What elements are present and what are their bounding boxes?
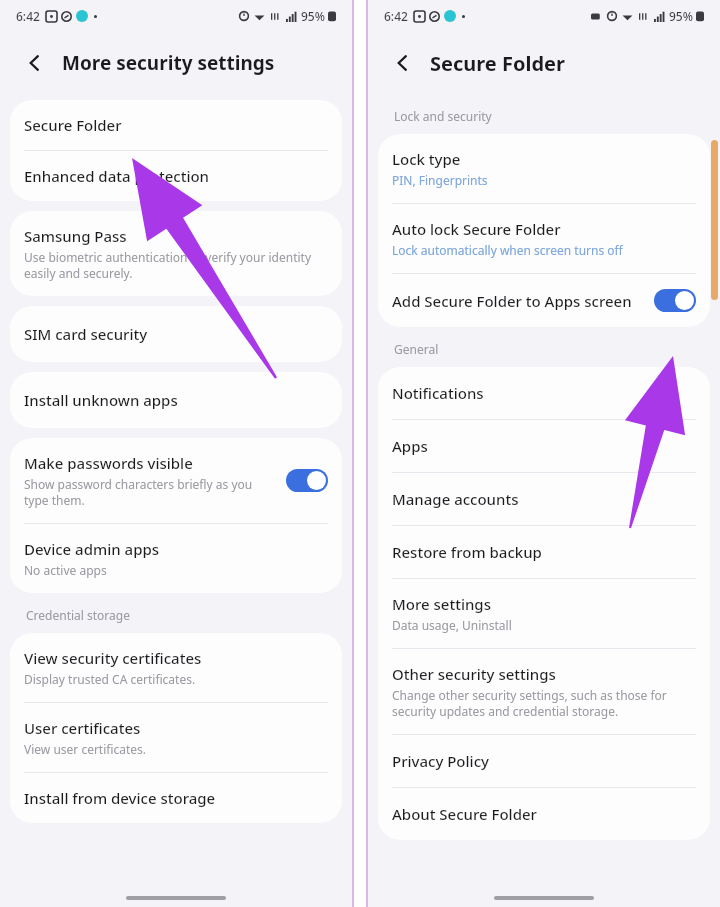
- button[interactable]: View security certificates: [10, 633, 342, 702]
- staticText: Lock automatically when screen turns off: [392, 242, 623, 258]
- staticText: Manage accounts: [392, 489, 519, 509]
- staticText: Other security settings: [392, 664, 556, 684]
- staticText: Show password characters briefly as you …: [24, 476, 253, 508]
- staticText: 6:42: [16, 8, 40, 24]
- button[interactable]: Install unknown apps: [10, 372, 342, 428]
- button[interactable]: Toggle: [654, 289, 696, 312]
- button[interactable]: SIM card security: [10, 306, 342, 362]
- button[interactable]: About Secure Folder: [378, 788, 710, 840]
- button[interactable]: Device admin apps: [10, 524, 342, 593]
- staticText: More security settings: [62, 50, 275, 76]
- staticText: PIN, Fingerprints: [392, 172, 488, 188]
- staticText: Change other security settings, such as …: [392, 687, 667, 719]
- staticText: Auto lock Secure Folder: [392, 219, 561, 239]
- button[interactable]: Toggle: [286, 469, 328, 492]
- button[interactable]: Notifications: [378, 367, 710, 419]
- staticText: 95%: [669, 8, 693, 24]
- button[interactable]: Privacy Policy: [378, 735, 710, 787]
- staticText: Enhanced data protection: [24, 166, 210, 186]
- staticText: Credential storage: [26, 607, 130, 623]
- staticText: SIM card security: [24, 324, 148, 344]
- button[interactable]: Add Secure Folder to Apps screen: [378, 274, 710, 327]
- staticText: Samsung Pass: [24, 226, 127, 246]
- button[interactable]: Enhanced data protection: [10, 151, 342, 201]
- button[interactable]: Manage accounts: [378, 473, 710, 525]
- staticText: Secure Folder: [430, 50, 565, 77]
- staticText: Secure Folder: [24, 115, 122, 135]
- button[interactable]: Lock type: [378, 134, 710, 203]
- staticText: View security certificates: [24, 648, 202, 668]
- staticText: Lock and security: [394, 108, 492, 124]
- staticText: View user certificates.: [24, 741, 147, 757]
- staticText: Privacy Policy: [392, 751, 489, 771]
- staticText: Data usage, Uninstall: [392, 617, 512, 633]
- button[interactable]: Back: [386, 46, 420, 80]
- button[interactable]: Restore from backup: [378, 526, 710, 578]
- staticText: About Secure Folder: [392, 804, 537, 824]
- staticText: Restore from backup: [392, 542, 542, 562]
- button[interactable]: Back: [18, 46, 52, 80]
- button[interactable]: Auto lock Secure Folder: [378, 204, 710, 273]
- staticText: Apps: [392, 436, 428, 456]
- button[interactable]: Make passwords visible: [10, 438, 342, 523]
- button[interactable]: Install from device storage: [10, 773, 342, 823]
- staticText: More settings: [392, 594, 491, 614]
- staticText: Install unknown apps: [24, 390, 178, 410]
- staticText: Lock type: [392, 149, 461, 169]
- staticText: Add Secure Folder to Apps screen: [392, 291, 632, 311]
- staticText: No active apps: [24, 562, 107, 578]
- staticText: 95%: [301, 8, 325, 24]
- button[interactable]: More settings: [378, 579, 710, 648]
- button[interactable]: User certificates: [10, 703, 342, 772]
- staticText: Notifications: [392, 383, 484, 403]
- staticText: Device admin apps: [24, 539, 160, 559]
- staticText: User certificates: [24, 718, 141, 738]
- staticText: General: [394, 341, 439, 357]
- staticText: 6:42: [384, 8, 408, 24]
- button[interactable]: Samsung Pass: [10, 211, 342, 296]
- staticText: Install from device storage: [24, 788, 216, 808]
- button[interactable]: Secure Folder: [10, 100, 342, 150]
- staticText: Use biometric authentication to verify y…: [24, 249, 312, 281]
- button[interactable]: Apps: [378, 420, 710, 472]
- staticText: Make passwords visible: [24, 453, 193, 473]
- button[interactable]: Other security settings: [378, 649, 710, 734]
- staticText: Display trusted CA certificates.: [24, 671, 196, 687]
